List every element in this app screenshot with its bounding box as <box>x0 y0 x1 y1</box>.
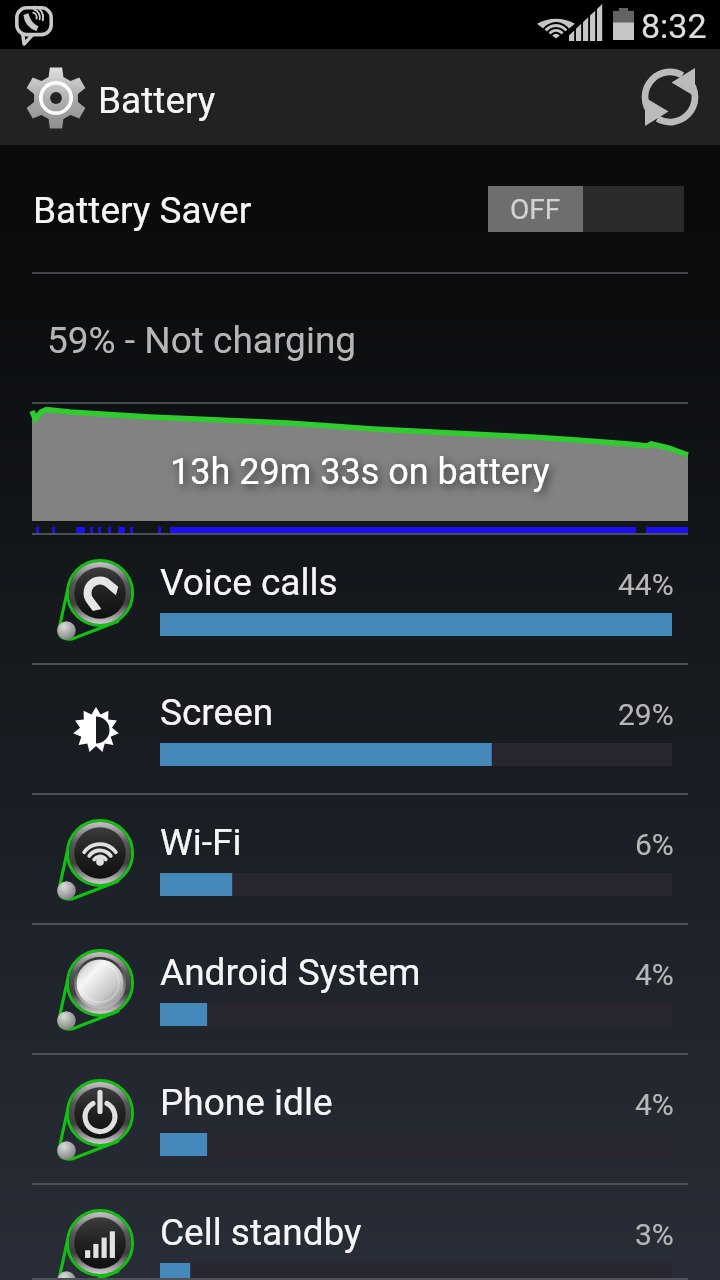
staticText: OFF <box>510 193 561 226</box>
button[interactable]: 13h 29m 33s on battery <box>0 404 720 535</box>
button[interactable]: Android System <box>0 925 720 1055</box>
staticText: Voice calls <box>160 561 338 604</box>
staticText: 44% <box>618 567 674 602</box>
button[interactable]: Battery <box>0 49 300 145</box>
button[interactable]: Battery Saver <box>0 145 720 274</box>
staticText: Phone idle <box>160 1081 333 1124</box>
button[interactable]: Voice calls <box>0 535 720 665</box>
staticText: 4% <box>635 1087 674 1122</box>
button[interactable]: Wi-Fi <box>0 795 720 925</box>
staticText: 4% <box>635 957 674 992</box>
staticText: Cell standby <box>160 1211 362 1254</box>
button[interactable]: Refresh <box>624 49 720 145</box>
staticText: Wi-Fi <box>160 821 242 864</box>
staticText: 8:32 <box>641 6 707 46</box>
button[interactable]: Cell standby <box>0 1185 720 1280</box>
staticText: 3% <box>635 1217 674 1252</box>
button[interactable]: Screen <box>0 665 720 795</box>
staticText: 59% - Not charging <box>47 319 357 362</box>
staticText: Battery <box>98 79 216 122</box>
staticText: Android System <box>160 951 421 994</box>
staticText: Battery Saver <box>33 189 252 232</box>
staticText: 29% <box>618 697 674 732</box>
staticText: 6% <box>635 827 674 862</box>
button[interactable]: Phone idle <box>0 1055 720 1185</box>
staticText: 13h 29m 33s on battery <box>170 451 550 493</box>
staticText: Screen <box>160 691 274 734</box>
